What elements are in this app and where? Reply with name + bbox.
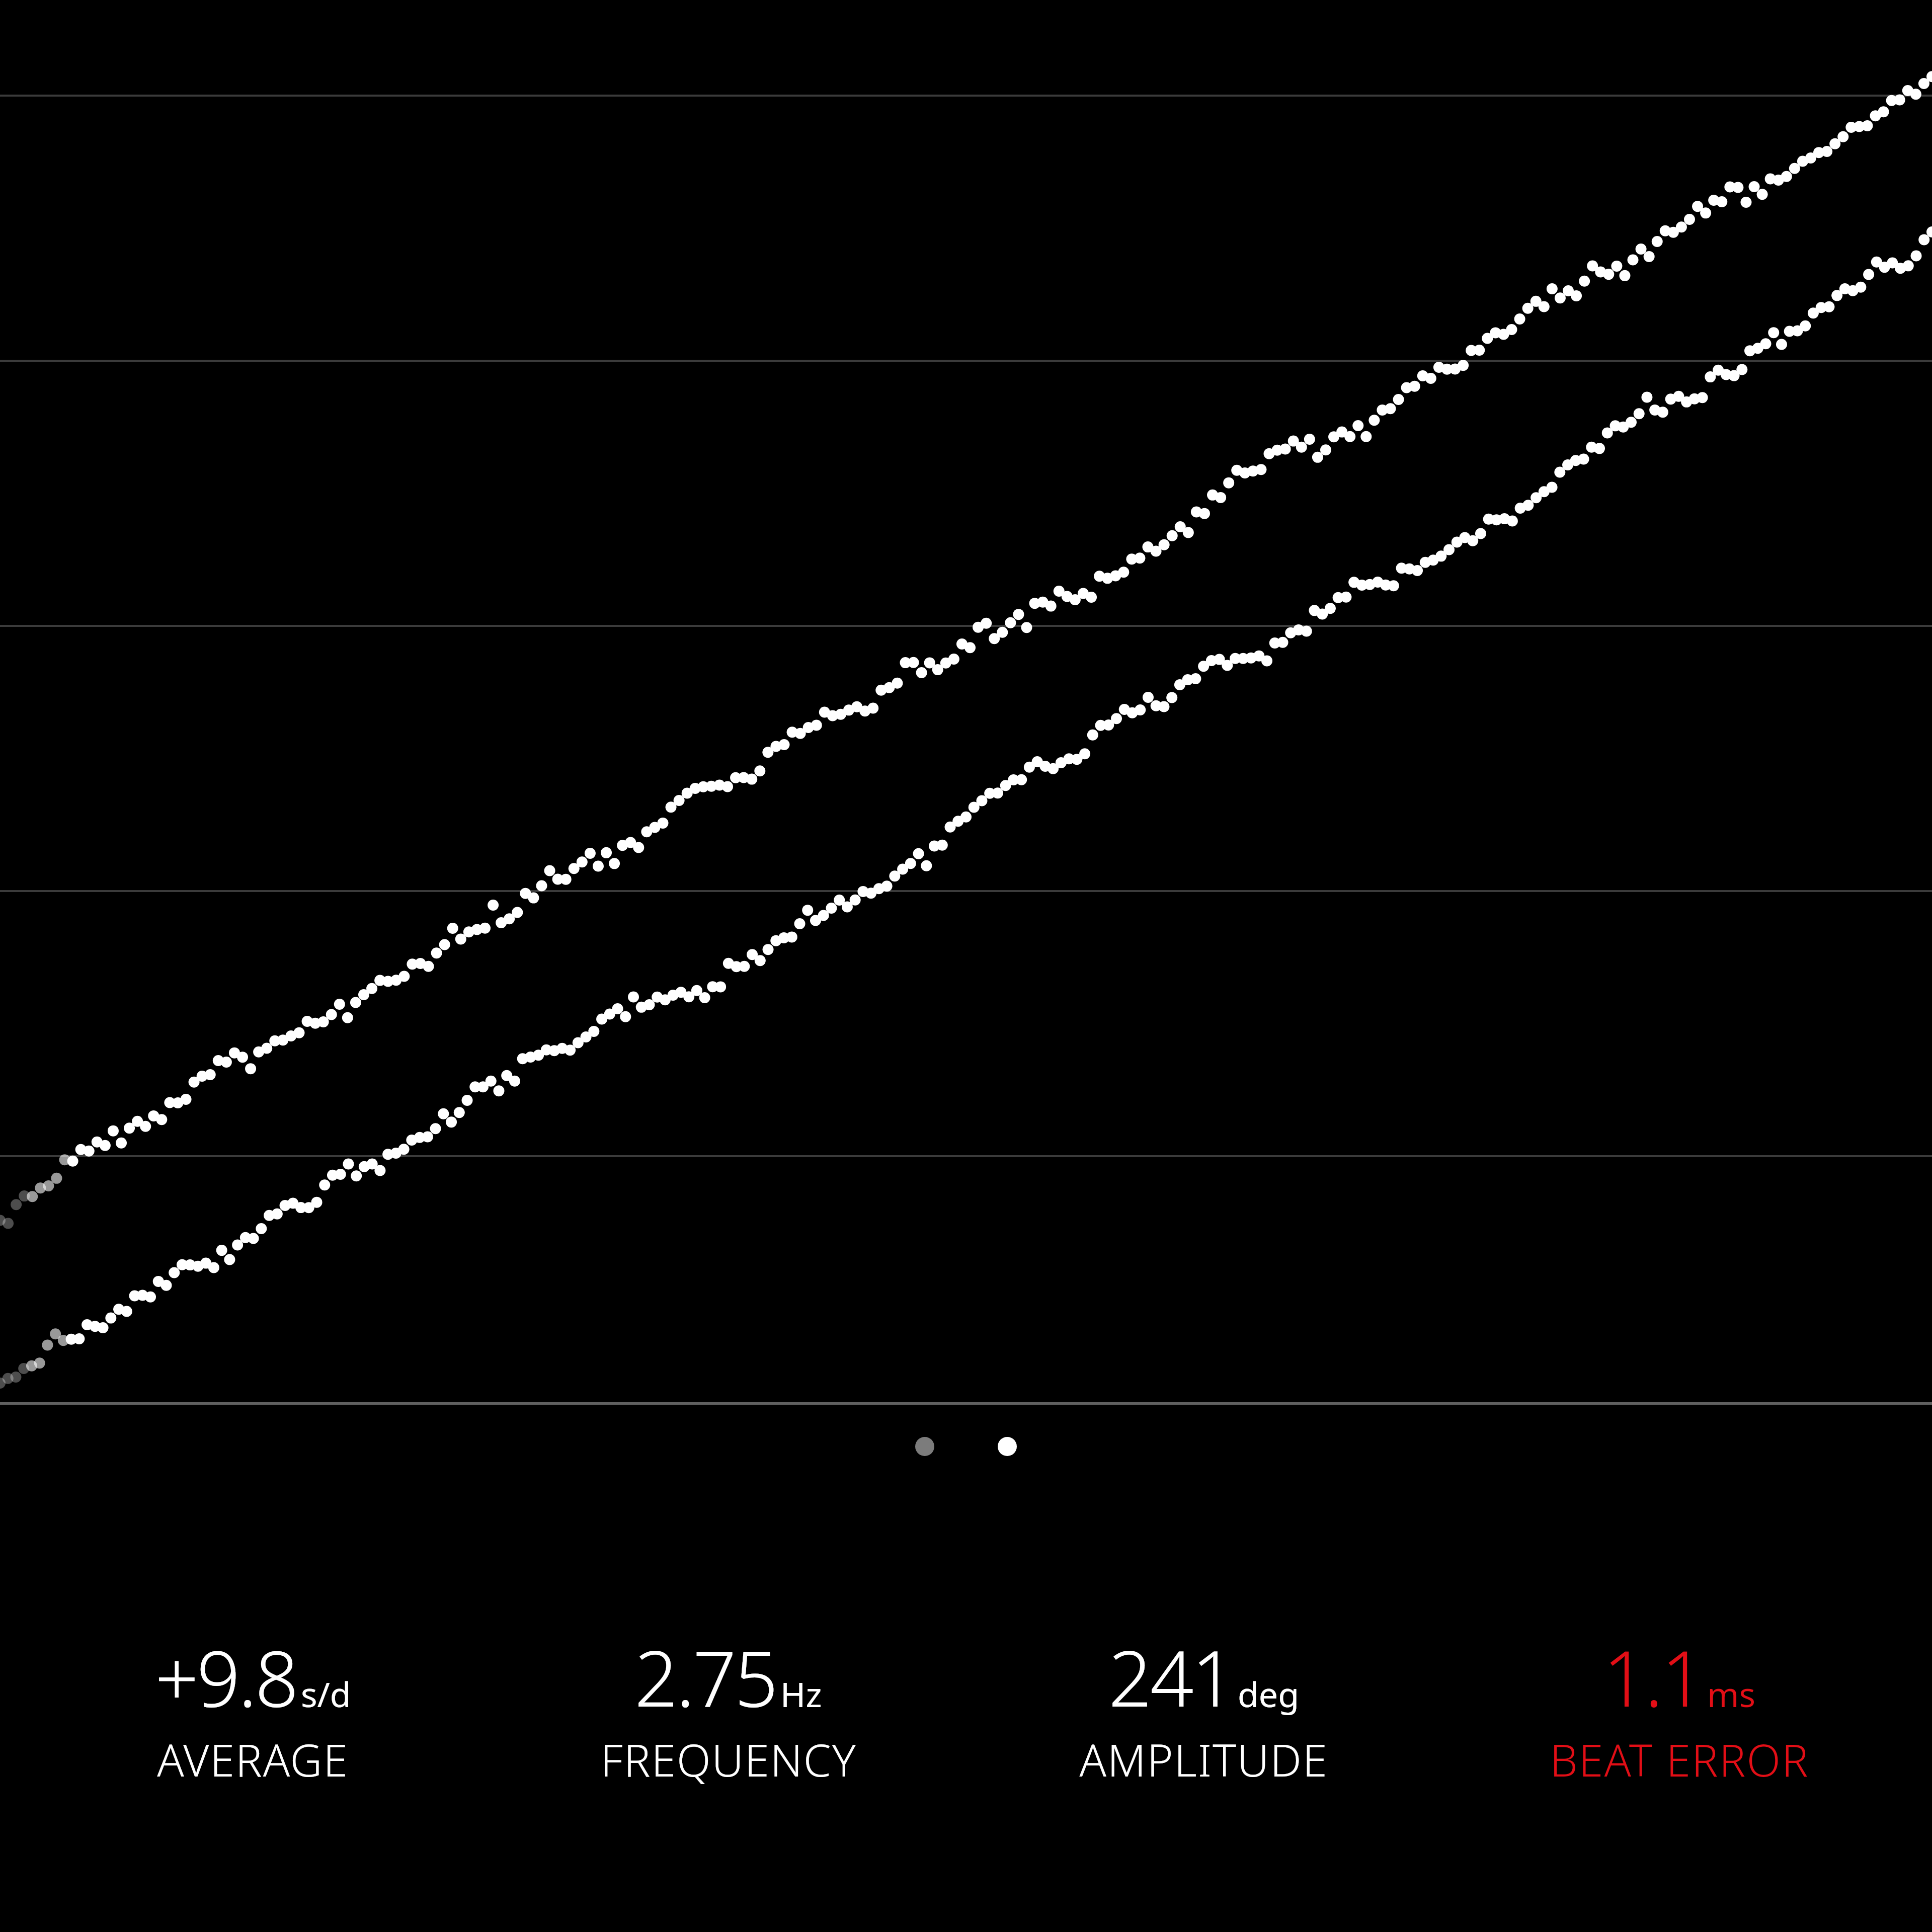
staticText: 241 (1108, 1625, 1234, 1729)
staticText: AVERAGE (157, 1729, 349, 1790)
button[interactable]: +9.8 (15, 1625, 491, 1790)
staticText: BEAT ERROR (1550, 1729, 1809, 1790)
staticText: 1.1 (1603, 1625, 1703, 1729)
staticText: AMPLITUDE (1079, 1729, 1328, 1790)
staticText: FREQUENCY (600, 1729, 857, 1790)
staticText: Hz (780, 1670, 822, 1717)
staticText: deg (1238, 1670, 1299, 1717)
button[interactable]: 1.1 (1441, 1625, 1917, 1790)
button[interactable]: Page 2 selected (998, 1437, 1017, 1456)
button[interactable]: Timing trace graph (0, 0, 1932, 1405)
staticText: +9.8 (155, 1625, 297, 1729)
button[interactable]: Page 1 (915, 1437, 934, 1456)
button[interactable]: 2.75 (491, 1625, 966, 1790)
staticText: 2.75 (634, 1625, 776, 1729)
staticText: ms (1707, 1670, 1756, 1717)
button[interactable]: 241 (966, 1625, 1441, 1790)
staticText: s/d (301, 1670, 351, 1717)
